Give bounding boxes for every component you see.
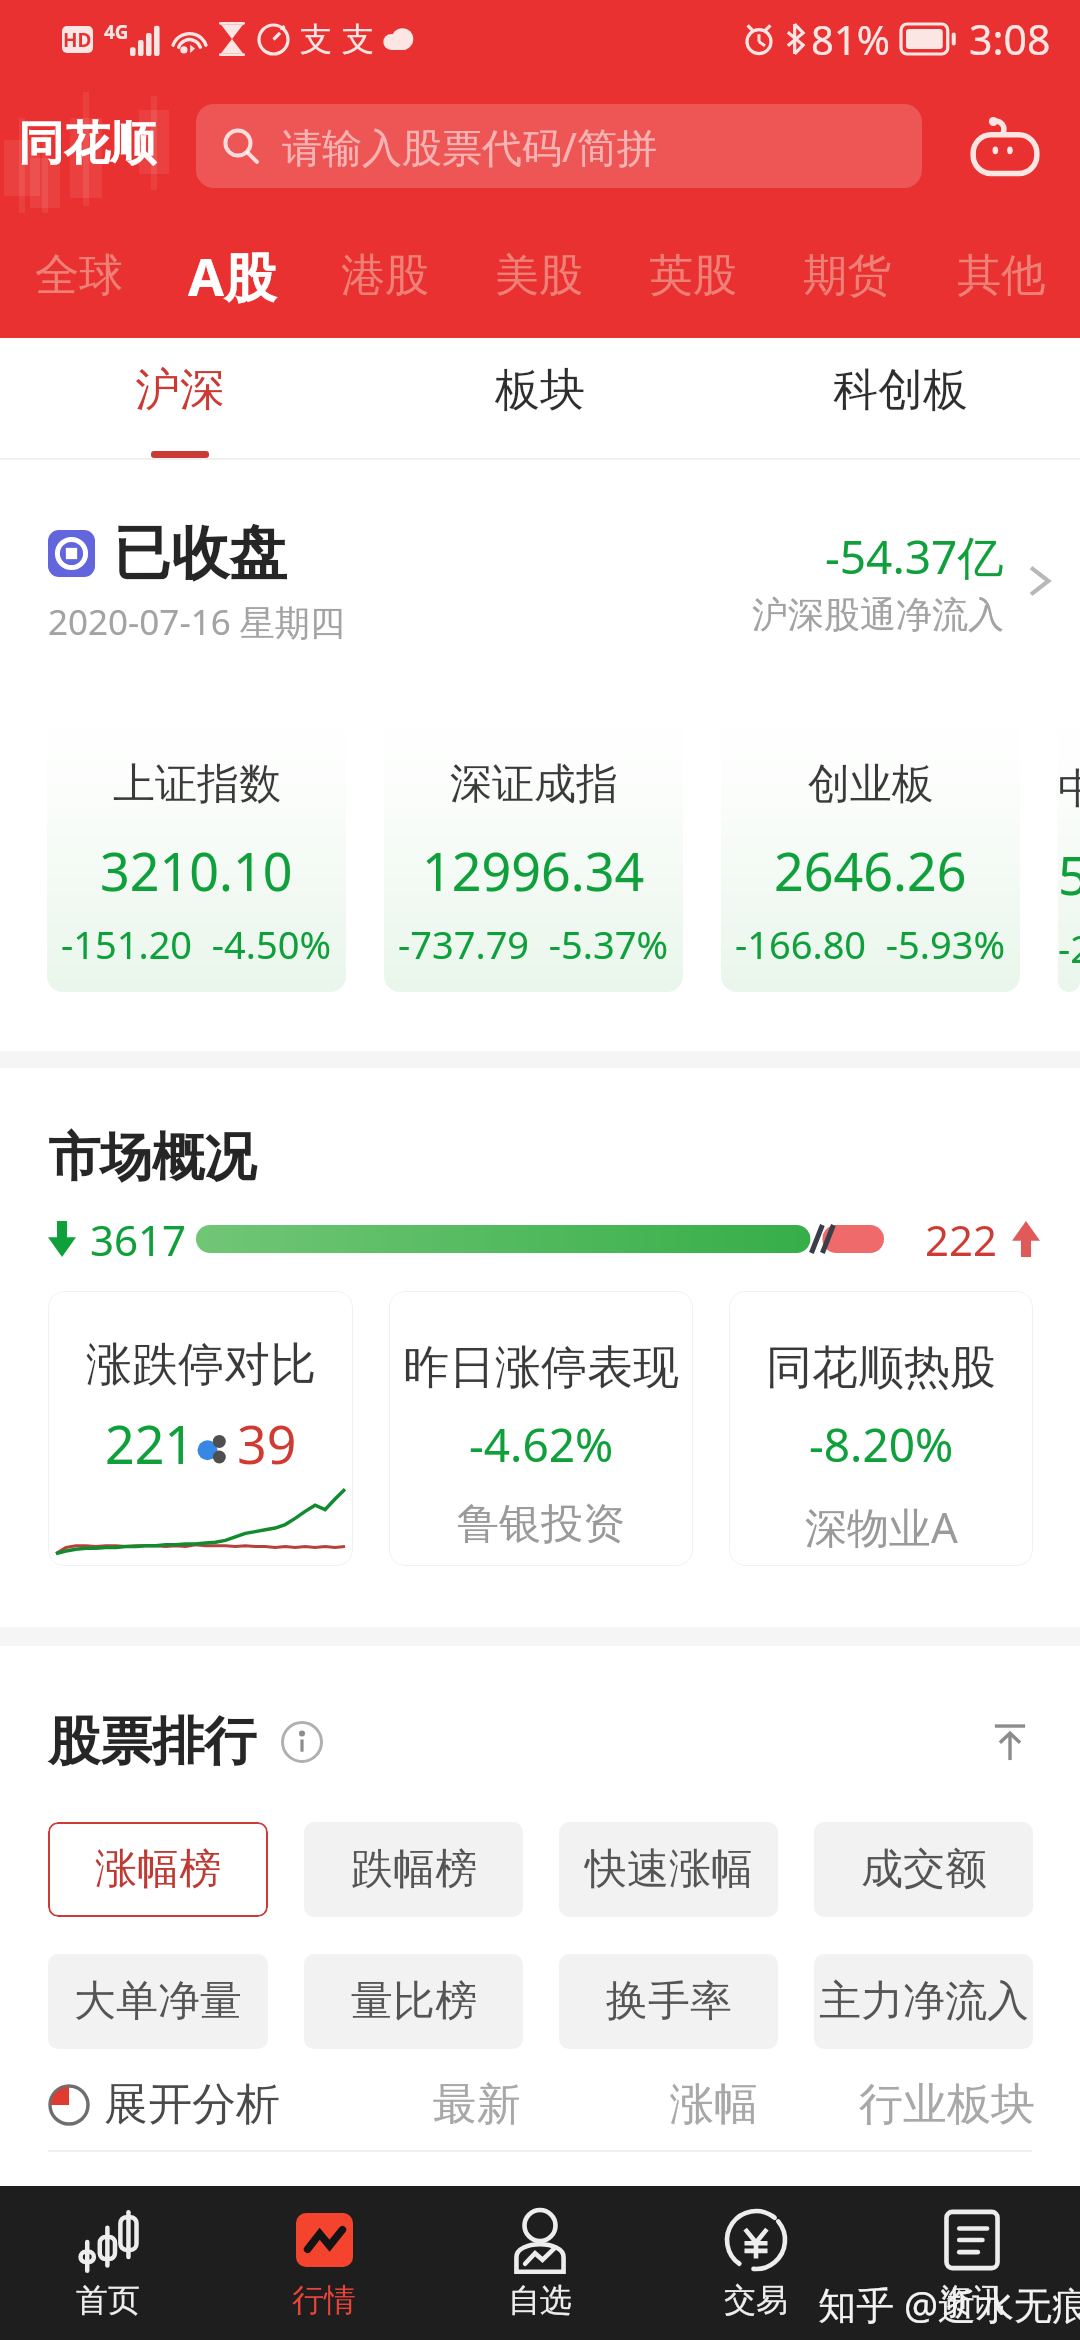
staticText: 快速涨幅 bbox=[585, 1843, 753, 1896]
button[interactable]: 涨幅榜 bbox=[48, 1822, 268, 1917]
staticText: 3617 bbox=[90, 1211, 187, 1267]
button[interactable]: 成交额 bbox=[814, 1822, 1033, 1917]
staticText: 涨跌停对比 bbox=[86, 1336, 316, 1394]
button[interactable]: 快速涨幅 bbox=[559, 1822, 778, 1917]
staticText: -8.20% bbox=[809, 1413, 954, 1476]
staticText: 最新 bbox=[433, 2077, 521, 2132]
staticText: HD bbox=[63, 27, 92, 53]
staticText: -280.00 -4.20% bbox=[1058, 922, 1080, 974]
staticText: -151.20 -4.50% bbox=[61, 918, 332, 970]
staticText: 美股 bbox=[495, 248, 583, 303]
staticText: 主力净流入 bbox=[819, 1975, 1029, 2028]
staticText: 请输入股票代码/简拼 bbox=[282, 119, 657, 174]
staticText: 上证指数 bbox=[113, 758, 281, 811]
button[interactable]: 科创板 bbox=[720, 338, 1080, 460]
staticText: 科创板 bbox=[833, 362, 968, 419]
staticText: 成交额 bbox=[861, 1843, 987, 1896]
staticText: 3:08 bbox=[969, 11, 1051, 67]
button[interactable]: 自选 bbox=[432, 2186, 648, 2340]
staticText: 81% bbox=[811, 12, 890, 66]
button[interactable]: 换手率 bbox=[559, 1954, 778, 2049]
button[interactable]: 最新 bbox=[387, 2058, 567, 2150]
button[interactable]: 跌幅榜 bbox=[304, 1822, 523, 1917]
staticText: 4G bbox=[104, 19, 129, 45]
staticText: 股票排行 bbox=[48, 1709, 256, 1775]
button[interactable]: 主力净流入 bbox=[814, 1954, 1033, 2049]
staticText: 支 bbox=[342, 19, 374, 59]
button[interactable]: 说明 bbox=[280, 1720, 324, 1764]
button[interactable]: 昨日涨停表现 bbox=[389, 1291, 693, 1566]
button[interactable]: 智能助手 bbox=[955, 96, 1055, 196]
staticText: -54.37亿 bbox=[825, 525, 1004, 588]
staticText: 港股 bbox=[341, 248, 429, 303]
staticText: 5580.00 bbox=[1058, 839, 1080, 910]
staticText: 大单净量 bbox=[74, 1975, 242, 2028]
button[interactable]: 交易 bbox=[648, 2186, 864, 2340]
button[interactable]: 行情 bbox=[216, 2186, 432, 2340]
staticText: 支 bbox=[300, 19, 332, 59]
button[interactable]: 同花顺热股 bbox=[729, 1291, 1033, 1566]
staticText: 换手率 bbox=[606, 1975, 732, 2028]
staticText: 交易 bbox=[724, 2280, 788, 2320]
button[interactable]: 英股 bbox=[616, 213, 770, 338]
staticText: -166.80 -5.93% bbox=[735, 918, 1006, 970]
button[interactable]: 板块 bbox=[360, 338, 720, 460]
button[interactable]: 创业板 bbox=[721, 708, 1020, 992]
button[interactable]: A股 bbox=[155, 213, 308, 338]
staticText: 2646.26 bbox=[774, 835, 967, 906]
button[interactable]: 上证指数 bbox=[47, 708, 346, 992]
button[interactable]: 全球 bbox=[2, 213, 155, 338]
staticText: 沪深股通净流入 bbox=[752, 592, 1004, 637]
staticText: 自选 bbox=[508, 2280, 572, 2320]
staticText: -4.62% bbox=[469, 1413, 614, 1476]
button[interactable]: 收起 bbox=[984, 1716, 1036, 1768]
staticText: 市场概况 bbox=[48, 1125, 256, 1191]
button[interactable]: 请输入股票代码/简拼 bbox=[196, 104, 922, 188]
button[interactable]: 首页 bbox=[0, 2186, 216, 2340]
button[interactable]: 展开分析 bbox=[48, 2077, 280, 2132]
staticText: 深物业A bbox=[805, 1498, 958, 1555]
staticText: 鲁银投资 bbox=[457, 1498, 625, 1551]
button[interactable]: 沪深 bbox=[0, 338, 360, 460]
button[interactable]: 港股 bbox=[308, 213, 462, 338]
button[interactable]: 期货 bbox=[770, 213, 924, 338]
staticText: 涨幅榜 bbox=[95, 1843, 221, 1896]
button[interactable]: 行业板块 bbox=[837, 2058, 1057, 2150]
staticText: 222 bbox=[925, 1211, 998, 1267]
staticText: 创业板 bbox=[808, 758, 934, 811]
staticText: 深证成指 bbox=[450, 758, 618, 811]
staticText: 涨幅 bbox=[670, 2077, 758, 2132]
staticText: 展开分析 bbox=[104, 2077, 280, 2132]
button[interactable]: 涨跌停对比 bbox=[48, 1291, 353, 1566]
staticText: 其他 bbox=[957, 248, 1045, 303]
staticText: 昨日涨停表现 bbox=[403, 1339, 679, 1397]
staticText: 跌幅榜 bbox=[351, 1843, 477, 1896]
staticText: 资讯 bbox=[940, 2280, 1004, 2320]
staticText: 同花顺热股 bbox=[766, 1339, 996, 1397]
staticText: 12996.34 bbox=[422, 835, 645, 906]
staticText: 量比榜 bbox=[351, 1975, 477, 2028]
staticText: 板块 bbox=[495, 362, 585, 419]
button[interactable]: 美股 bbox=[462, 213, 616, 338]
staticText: 沪深 bbox=[135, 362, 225, 419]
button[interactable]: 资讯 bbox=[864, 2186, 1080, 2340]
staticText: 期货 bbox=[803, 248, 891, 303]
staticText: 首页 bbox=[76, 2280, 140, 2320]
staticText: 3210.10 bbox=[100, 835, 293, 906]
staticText: 英股 bbox=[649, 248, 737, 303]
button[interactable]: 其他 bbox=[924, 213, 1078, 338]
staticText: -737.79 -5.37% bbox=[398, 918, 669, 970]
staticText: 已收盘 bbox=[113, 517, 287, 590]
button[interactable]: 量比榜 bbox=[304, 1954, 523, 2049]
button[interactable]: 涨幅 bbox=[624, 2058, 804, 2150]
staticText: A股 bbox=[188, 240, 276, 311]
button[interactable]: 中小100 bbox=[1058, 708, 1080, 992]
button[interactable]: 已收盘 bbox=[0, 460, 1080, 708]
staticText: 221 bbox=[105, 1408, 195, 1479]
staticText: 2020-07-16 星期四 bbox=[48, 598, 345, 646]
button[interactable]: 深证成指 bbox=[384, 708, 683, 992]
staticText: 全球 bbox=[35, 248, 123, 303]
staticText: 中小100 bbox=[1058, 758, 1080, 815]
staticText: 行业板块 bbox=[859, 2077, 1035, 2132]
button[interactable]: 大单净量 bbox=[48, 1954, 268, 2049]
